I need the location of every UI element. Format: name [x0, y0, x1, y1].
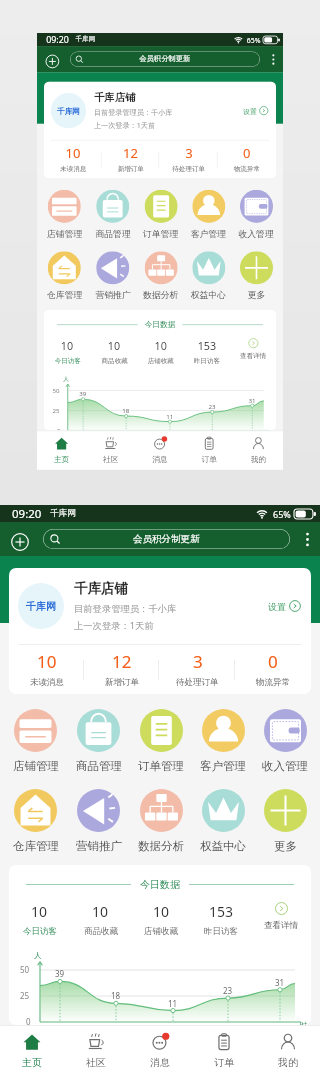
button[interactable]: 10 [44, 141, 102, 178]
button[interactable]: 消息 [128, 1025, 192, 1076]
staticText: 目前登录管理员：千小库 [74, 603, 177, 615]
staticText: 12 [123, 144, 138, 162]
button[interactable]: 社区 [86, 430, 135, 470]
button[interactable]: 10 [138, 338, 184, 365]
button[interactable]: 我的 [256, 1025, 320, 1076]
button[interactable]: 商品管理 [67, 709, 130, 773]
button[interactable]: 10 [131, 902, 191, 937]
button[interactable]: 主页 [37, 430, 86, 470]
staticText: 18 [111, 990, 121, 1001]
staticText: 153 [209, 902, 234, 921]
button[interactable]: 查看详情 [251, 902, 311, 931]
staticText: 千库网 [50, 508, 76, 519]
button[interactable]: 10 [91, 338, 138, 365]
button[interactable]: 0 [218, 141, 276, 178]
button[interactable]: 订单管理 [130, 709, 192, 773]
staticText: 09:20 [46, 34, 69, 46]
staticText: 收入管理 [238, 228, 274, 239]
staticText: 09:20 [12, 506, 42, 522]
button[interactable]: 店铺管理 [4, 709, 67, 773]
button[interactable]: 权益中心 [192, 789, 254, 853]
staticText: 18 [122, 406, 130, 414]
staticText: 订单 [214, 1056, 234, 1069]
button[interactable]: 仓库管理 [4, 789, 67, 853]
button[interactable]: More options [266, 52, 281, 67]
button[interactable]: 10 [44, 338, 91, 365]
staticText: 25 [52, 406, 60, 414]
button[interactable]: 会员积分制更新 [43, 529, 290, 549]
button[interactable]: 收入管理 [232, 190, 280, 239]
button[interactable]: 3 [159, 645, 235, 694]
staticText: 11 [166, 412, 174, 420]
staticText: 新增订单 [105, 677, 139, 688]
button[interactable]: 订单 [185, 430, 234, 470]
staticText: 3 [185, 144, 193, 162]
button[interactable]: 消息 [135, 430, 185, 470]
staticText: 今日数据 [140, 878, 180, 891]
button[interactable]: 数据分析 [137, 251, 185, 300]
button[interactable]: 数据分析 [130, 789, 192, 853]
button[interactable]: 收入管理 [254, 709, 316, 773]
staticText: 31 [248, 396, 256, 404]
button[interactable]: 12 [102, 141, 159, 178]
button[interactable]: More options [298, 530, 317, 549]
button[interactable]: 10 [9, 645, 84, 694]
button[interactable]: 营销推广 [88, 251, 137, 300]
button[interactable]: 仓库管理 [40, 251, 88, 300]
button[interactable]: 客户管理 [192, 709, 254, 773]
button[interactable]: 3 [159, 141, 218, 178]
button[interactable]: 订单管理 [137, 190, 185, 239]
button[interactable]: 更多 [254, 789, 316, 853]
staticText: 商品管理 [95, 228, 131, 239]
staticText: 0 [57, 426, 61, 430]
button[interactable]: 订单 [192, 1025, 256, 1076]
button[interactable]: 12 [84, 645, 159, 694]
button[interactable]: 更多 [232, 251, 280, 300]
staticText: 查看详情 [264, 920, 298, 931]
staticText: 10 [92, 902, 109, 921]
staticText: 社区 [86, 1056, 106, 1069]
button[interactable]: 0 [235, 645, 311, 694]
button[interactable]: 153 [191, 902, 251, 937]
button[interactable]: 社区 [64, 1025, 128, 1076]
staticText: 10 [61, 338, 74, 353]
staticText: 23 [208, 402, 216, 410]
button[interactable]: 店铺管理 [40, 190, 88, 239]
staticText: 153 [198, 338, 217, 353]
staticText: 10 [37, 650, 57, 673]
staticText: 我的 [251, 454, 266, 464]
button[interactable]: 设置 [268, 600, 301, 612]
button[interactable]: Add [43, 52, 62, 71]
button[interactable]: 10 [9, 902, 70, 937]
staticText: 物流异常 [234, 165, 260, 174]
button[interactable]: 设置 [243, 106, 268, 115]
staticText: 目前登录管理员：千小库 [94, 108, 173, 117]
button[interactable]: 我的 [234, 430, 283, 470]
button[interactable]: 商品管理 [88, 190, 137, 239]
staticText: 店铺管理 [47, 228, 82, 239]
button[interactable]: 主页 [0, 1025, 64, 1076]
button[interactable]: 客户管理 [185, 190, 232, 239]
staticText: 查看详情 [240, 352, 266, 360]
staticText: 消息 [152, 454, 168, 464]
staticText: 数据分析 [138, 839, 184, 853]
staticText: 10 [153, 902, 170, 921]
staticText: 12 [112, 650, 132, 673]
staticText: 我的 [278, 1056, 298, 1069]
staticText: 设置 [243, 107, 257, 115]
button[interactable]: 权益中心 [185, 251, 232, 300]
button[interactable]: 会员积分制更新 [70, 51, 260, 67]
staticText: 主页 [22, 1056, 42, 1069]
staticText: 数据分析 [143, 290, 178, 301]
button[interactable]: 10 [70, 902, 131, 937]
staticText: 上一次登录：1天前 [94, 121, 155, 131]
button[interactable]: 153 [184, 338, 230, 365]
staticText: 10 [31, 902, 48, 921]
button[interactable]: Add [8, 530, 32, 554]
staticText: 31 [275, 977, 285, 988]
button[interactable]: 查看详情 [230, 338, 276, 360]
button[interactable]: 营销推广 [67, 789, 130, 853]
staticText: 更多 [274, 839, 297, 853]
staticText: 千库网 [26, 600, 56, 613]
staticText: 0 [268, 650, 278, 673]
